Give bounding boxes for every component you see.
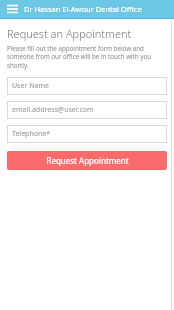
button[interactable]: email.address@user.com [7, 101, 167, 119]
button[interactable]: User Name [7, 77, 167, 95]
staticText: Request Appointment [46, 155, 129, 166]
staticText: email.address@user.com [12, 105, 94, 115]
button[interactable]: Request Appointment [7, 151, 167, 170]
staticText: Dr Hassan El-Awour Dental Office [24, 4, 142, 14]
button[interactable]: Open navigation menu [4, 2, 20, 16]
staticText: User Name [12, 81, 49, 91]
staticText: Telephone* [12, 129, 51, 139]
button[interactable]: Telephone* [7, 125, 167, 143]
staticText: Request an Appointment [7, 26, 132, 41]
staticText: Please fill out the appointment form bel… [7, 44, 165, 69]
